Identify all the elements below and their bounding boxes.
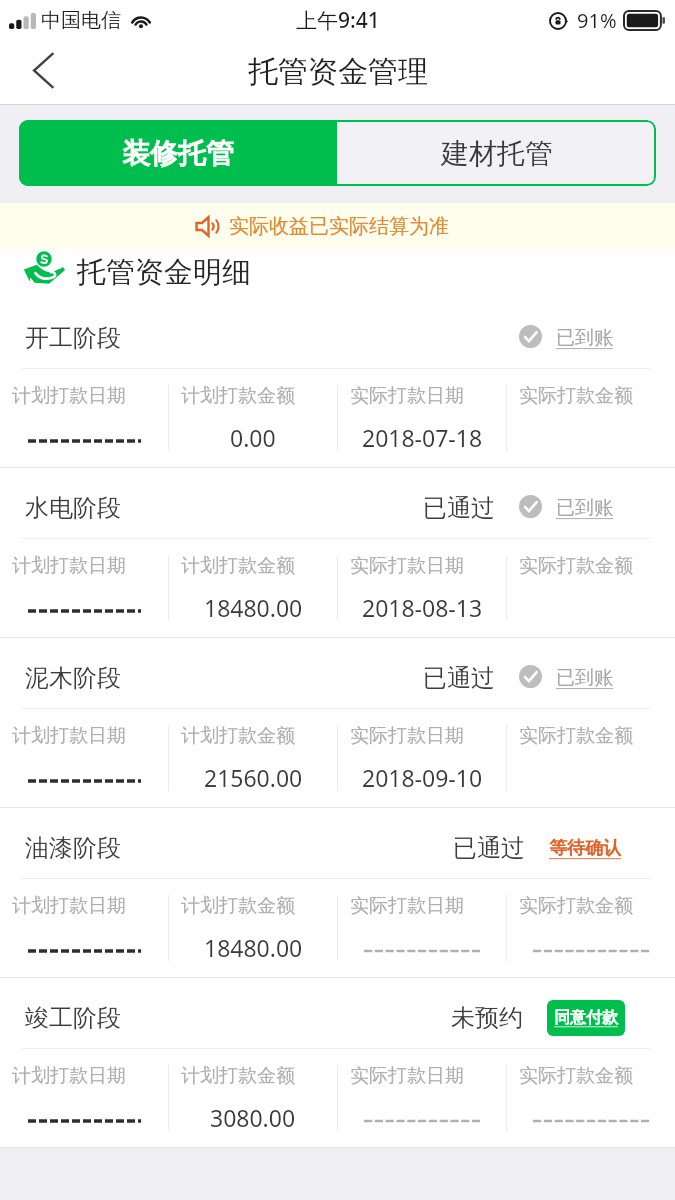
staticText: 实际打款金额 — [519, 384, 633, 408]
staticText: 0.00 — [230, 422, 276, 453]
staticText: 实际打款金额 — [519, 894, 633, 918]
staticText: 实际打款日期 — [350, 894, 464, 918]
staticText: 18480.00 — [204, 932, 303, 963]
staticText: 实际打款金额 — [519, 554, 633, 578]
staticText: 2018-08-13 — [362, 592, 483, 623]
staticText: 计划打款日期 — [12, 1064, 126, 1088]
staticText: 计划打款金额 — [181, 554, 295, 578]
staticText: 计划打款金额 — [181, 894, 295, 918]
staticText: 91% — [577, 7, 617, 34]
staticText: 已到账 — [556, 326, 613, 350]
button[interactable]: 装修托管 — [19, 120, 337, 186]
staticText: 计划打款日期 — [12, 554, 126, 578]
button[interactable]: 同意付款 — [547, 1000, 625, 1036]
staticText: 2018-07-18 — [362, 422, 483, 453]
staticText: 实际打款金额 — [519, 724, 633, 748]
staticText: 中国电信 — [41, 8, 121, 33]
staticText: 已通过 — [423, 663, 495, 693]
staticText: 实际打款日期 — [350, 1064, 464, 1088]
staticText: 已通过 — [423, 493, 495, 523]
staticText: 建材托管 — [441, 136, 553, 171]
staticText: 托管资金管理 — [248, 53, 428, 91]
staticText: 已通过 — [453, 833, 525, 863]
staticText: 油漆阶段 — [25, 833, 121, 863]
button[interactable]: 已到账 — [519, 496, 675, 520]
staticText: 计划打款日期 — [12, 894, 126, 918]
staticText: 开工阶段 — [25, 323, 121, 353]
staticText: 实际打款日期 — [350, 724, 464, 748]
button[interactable]: 竣工阶段 — [0, 978, 675, 1148]
staticText: 装修托管 — [122, 136, 234, 171]
staticText: 托管资金明细 — [77, 254, 251, 291]
staticText: 上午9:41 — [296, 6, 380, 35]
button[interactable]: 已到账 — [519, 326, 675, 350]
button[interactable]: 建材托管 — [337, 120, 656, 186]
staticText: 已到账 — [556, 666, 613, 690]
button[interactable]: 开工阶段 — [0, 298, 675, 468]
staticText: 竣工阶段 — [25, 1003, 121, 1033]
staticText: 未预约 — [451, 1003, 523, 1033]
staticText: 实际打款日期 — [350, 554, 464, 578]
staticText: 2018-09-10 — [362, 762, 483, 793]
button[interactable]: 等待确认 — [549, 837, 675, 860]
staticText: 实际打款金额 — [519, 1064, 633, 1088]
staticText: 18480.00 — [204, 592, 303, 623]
button[interactable]: 泥木阶段 — [0, 638, 675, 808]
staticText: 21560.00 — [204, 762, 303, 793]
button[interactable]: 返回 — [0, 40, 86, 105]
staticText: 计划打款日期 — [12, 384, 126, 408]
staticText: 实际收益已实际结算为准 — [229, 214, 449, 239]
staticText: 实际打款日期 — [350, 384, 464, 408]
staticText: 计划打款日期 — [12, 724, 126, 748]
button[interactable]: 水电阶段 — [0, 468, 675, 638]
staticText: 计划打款金额 — [181, 1064, 295, 1088]
staticText: 水电阶段 — [25, 493, 121, 523]
staticText: 同意付款 — [554, 1008, 618, 1028]
staticText: 计划打款金额 — [181, 384, 295, 408]
button[interactable]: 油漆阶段 — [0, 808, 675, 978]
staticText: 泥木阶段 — [25, 663, 121, 693]
staticText: 计划打款金额 — [181, 724, 295, 748]
staticText: 等待确认 — [549, 837, 621, 860]
button[interactable]: 已到账 — [519, 666, 675, 690]
staticText: 3080.00 — [210, 1102, 296, 1133]
staticText: 已到账 — [556, 496, 613, 520]
